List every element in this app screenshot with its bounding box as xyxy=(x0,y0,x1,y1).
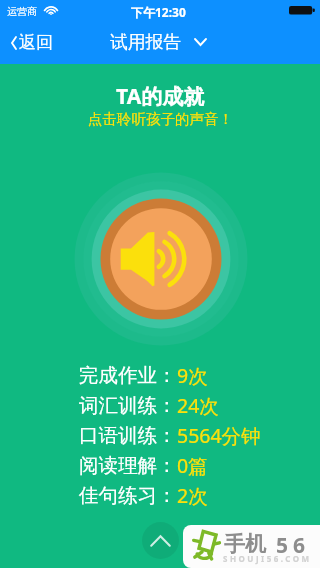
staticText: 阅读理解： xyxy=(79,453,177,478)
button[interactable]: 返回 xyxy=(0,26,63,59)
staticText: 佳句练习： xyxy=(79,483,177,508)
staticText: 试用报告 xyxy=(110,31,182,53)
staticText: 点击聆听孩子的声音！ xyxy=(88,110,233,128)
staticText: 口语训练： xyxy=(79,423,177,448)
staticText: 2次 xyxy=(177,482,208,509)
staticText: TA的成就 xyxy=(116,82,205,111)
staticText: 词汇训练： xyxy=(79,393,177,418)
staticText: 返回 xyxy=(19,32,53,53)
staticText: 56 xyxy=(276,531,311,560)
staticText: 5564分钟 xyxy=(177,422,261,449)
button[interactable]: 试用报告 xyxy=(106,27,211,57)
button[interactable]: Play voice xyxy=(75,173,247,345)
button[interactable]: Scroll to top xyxy=(142,522,179,559)
staticText: SHOUJI56.COM xyxy=(223,553,312,564)
staticText: 手机 xyxy=(224,531,266,557)
staticText: 运营商 xyxy=(7,5,37,18)
staticText: 0篇 xyxy=(177,452,208,479)
staticText: 完成作业： xyxy=(79,363,177,388)
staticText: 下午12:30 xyxy=(131,4,186,20)
staticText: 9次 xyxy=(177,362,208,389)
staticText: 24次 xyxy=(177,392,219,419)
